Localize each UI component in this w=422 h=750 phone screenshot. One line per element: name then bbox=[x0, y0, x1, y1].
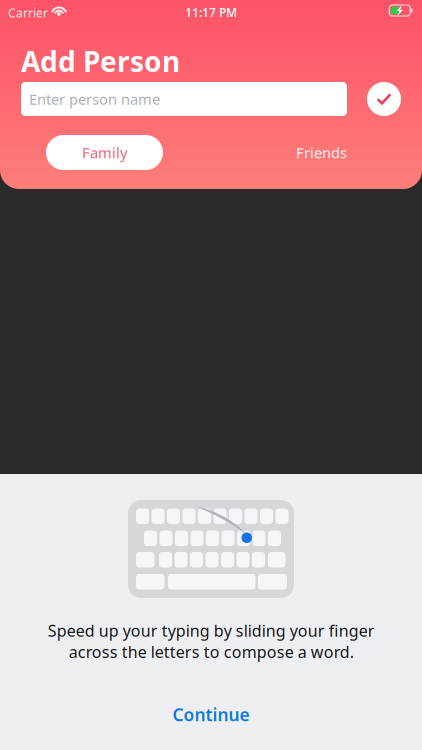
staticText: Speed up your typing by sliding your fin… bbox=[47, 620, 374, 662]
staticText: Carrier bbox=[8, 5, 48, 21]
button[interactable]: Continue bbox=[0, 696, 422, 732]
staticText: Friends bbox=[296, 143, 347, 162]
staticText: Continue bbox=[172, 703, 249, 726]
staticText: 11:17 PM bbox=[185, 4, 237, 20]
staticText: Add Person bbox=[21, 42, 180, 80]
button[interactable]: Family bbox=[46, 135, 163, 170]
button[interactable]: Confirm bbox=[367, 82, 401, 116]
staticText: Family bbox=[82, 143, 127, 162]
button[interactable]: Friends bbox=[263, 135, 380, 170]
staticText: Enter person name bbox=[29, 89, 160, 109]
